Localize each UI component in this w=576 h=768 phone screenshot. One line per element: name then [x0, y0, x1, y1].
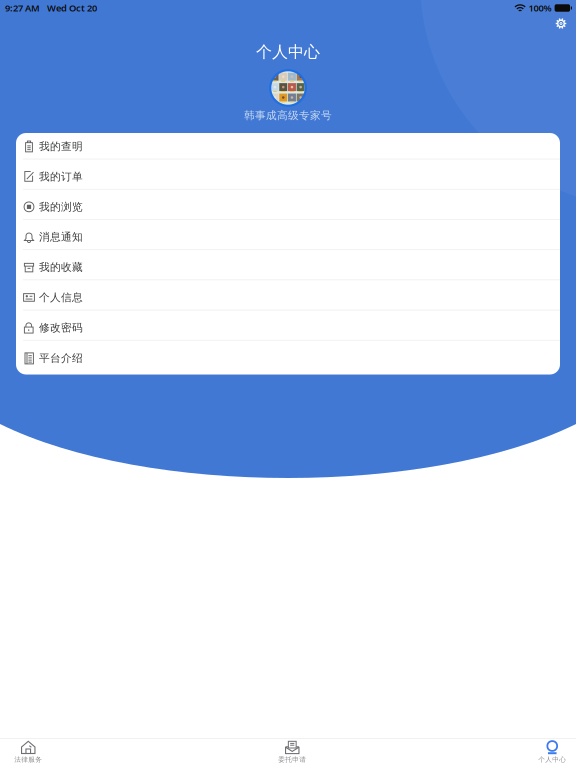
button[interactable]: 个人信息: [16, 284, 560, 314]
staticText: 消息通知: [39, 230, 83, 244]
button[interactable]: 委托申请: [263, 738, 321, 768]
button[interactable]: 我的收藏: [16, 254, 560, 284]
button[interactable]: Settings: [549, 16, 573, 31]
staticText: 法律服务: [14, 755, 42, 764]
staticText: Wed Oct 20: [47, 2, 97, 14]
staticText: 个人中心: [256, 42, 320, 62]
staticText: 我的查明: [39, 140, 83, 153]
staticText: 个人信息: [39, 291, 83, 304]
staticText: 委托申请: [278, 755, 306, 764]
button[interactable]: 平台介绍: [16, 344, 560, 375]
staticText: 我的浏览: [39, 200, 83, 213]
button[interactable]: 消息通知: [16, 224, 560, 254]
button[interactable]: 我的浏览: [16, 193, 560, 224]
staticText: 9:27 AM: [5, 2, 40, 14]
staticText: 个人中心: [538, 755, 566, 764]
button[interactable]: 法律服务: [0, 738, 57, 768]
button[interactable]: 个人中心: [523, 738, 576, 768]
button[interactable]: 我的查明: [16, 133, 560, 163]
staticText: 平台介绍: [39, 352, 83, 365]
button[interactable]: 修改密码: [16, 314, 560, 344]
button[interactable]: 我的订单: [16, 163, 560, 193]
staticText: 韩事成高级专家号: [244, 109, 332, 122]
staticText: 我的订单: [39, 170, 83, 183]
staticText: 100%: [529, 2, 552, 14]
staticText: 我的收藏: [39, 261, 83, 274]
staticText: 修改密码: [39, 321, 83, 334]
